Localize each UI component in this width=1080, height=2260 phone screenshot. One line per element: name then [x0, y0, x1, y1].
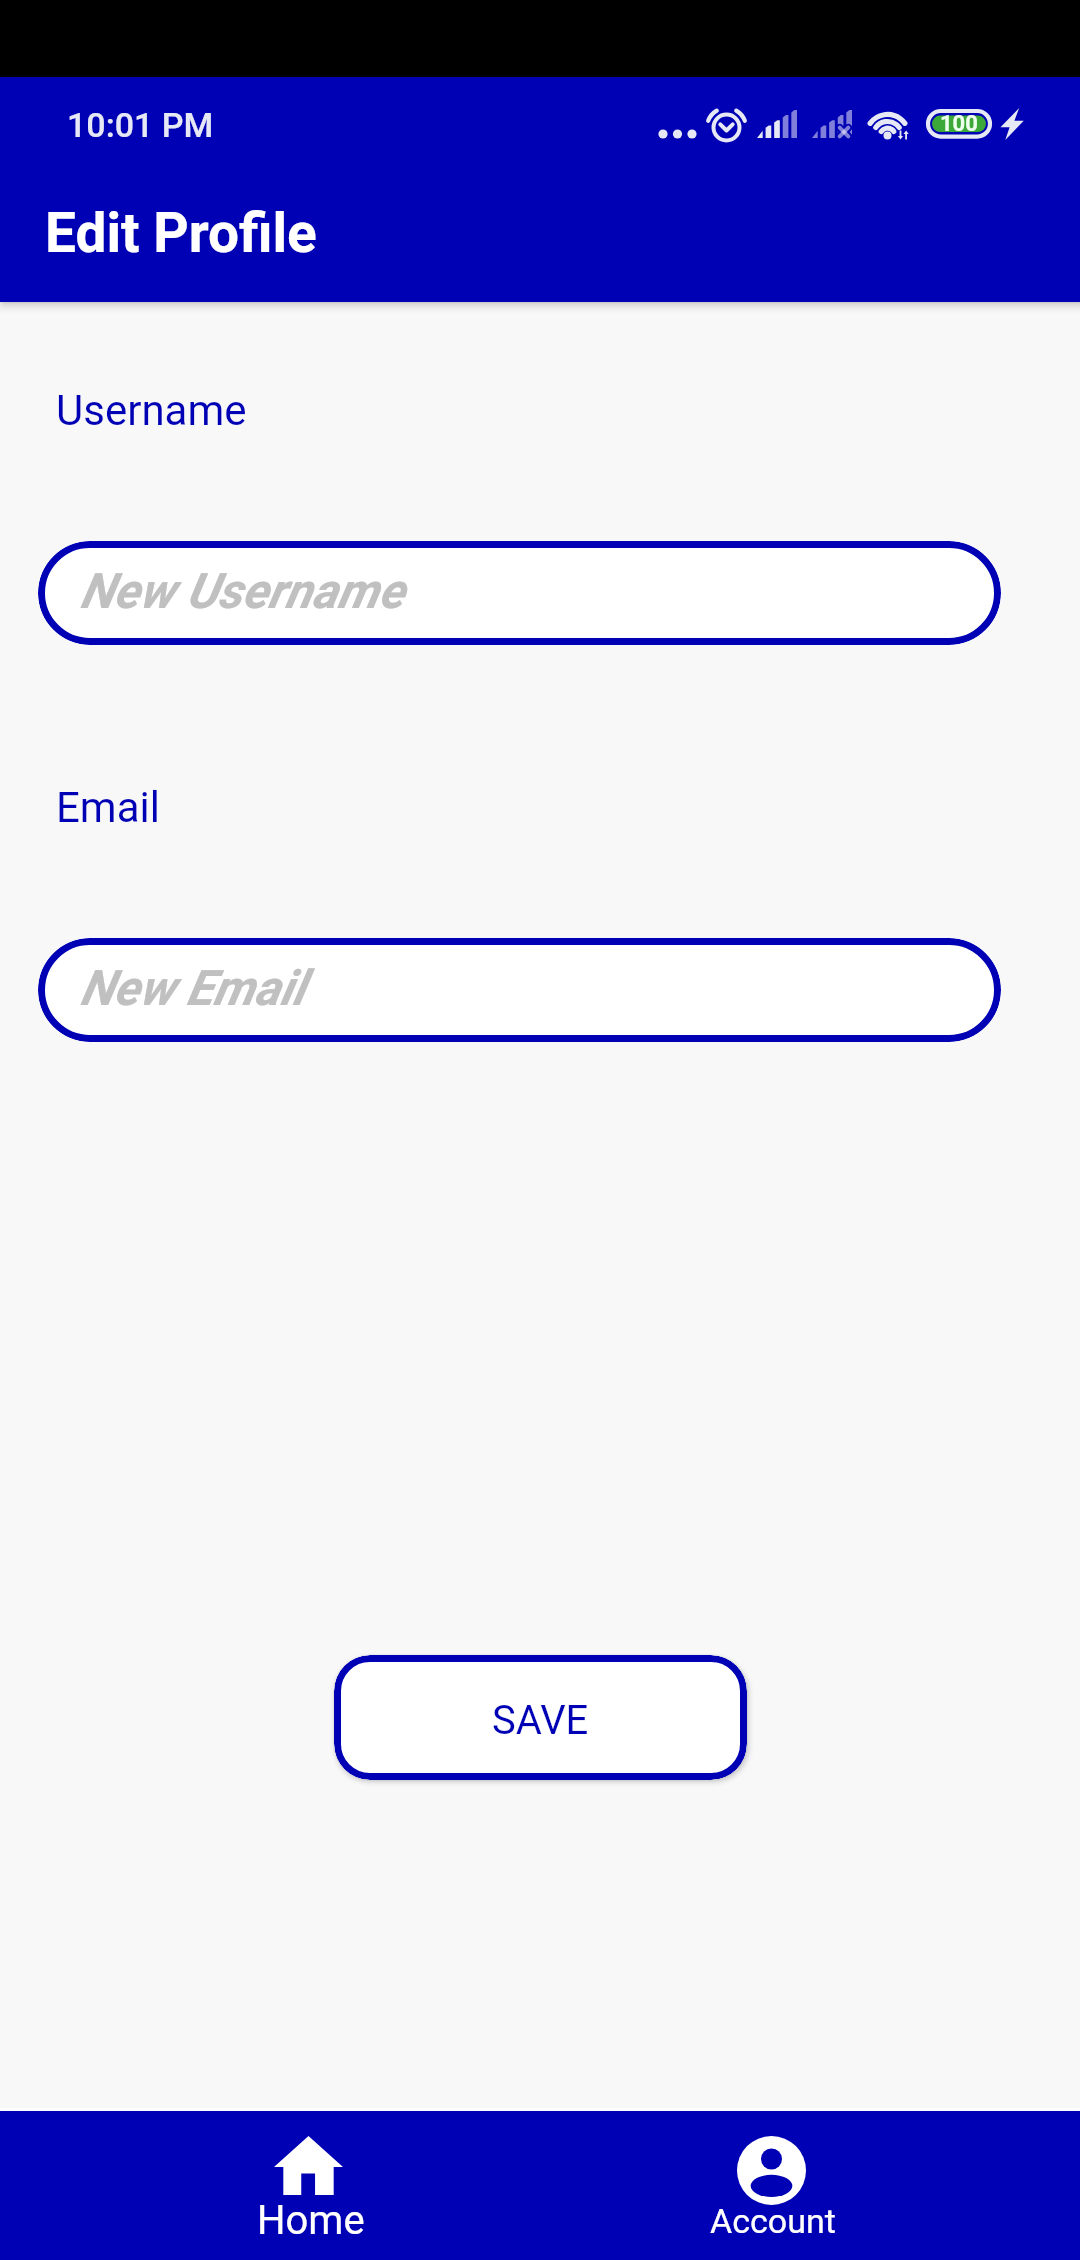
staticText: Username — [56, 386, 247, 435]
button[interactable]: Account — [677, 2111, 867, 2260]
staticText: Account — [710, 2201, 836, 2241]
button[interactable]: New Username — [38, 541, 1001, 645]
staticText: 100 — [940, 111, 978, 137]
staticText: SAVE — [492, 1697, 589, 1744]
staticText: New Username — [80, 563, 405, 620]
staticText: Edit Profile — [45, 201, 317, 265]
button[interactable]: Save — [334, 1655, 747, 1780]
button[interactable]: Home — [214, 2111, 404, 2260]
button[interactable]: New Email — [38, 938, 1001, 1042]
staticText: Email — [56, 783, 160, 832]
staticText: Home — [257, 2197, 365, 2244]
staticText: 10:01 PM — [67, 105, 214, 145]
staticText: New Email — [80, 960, 305, 1017]
